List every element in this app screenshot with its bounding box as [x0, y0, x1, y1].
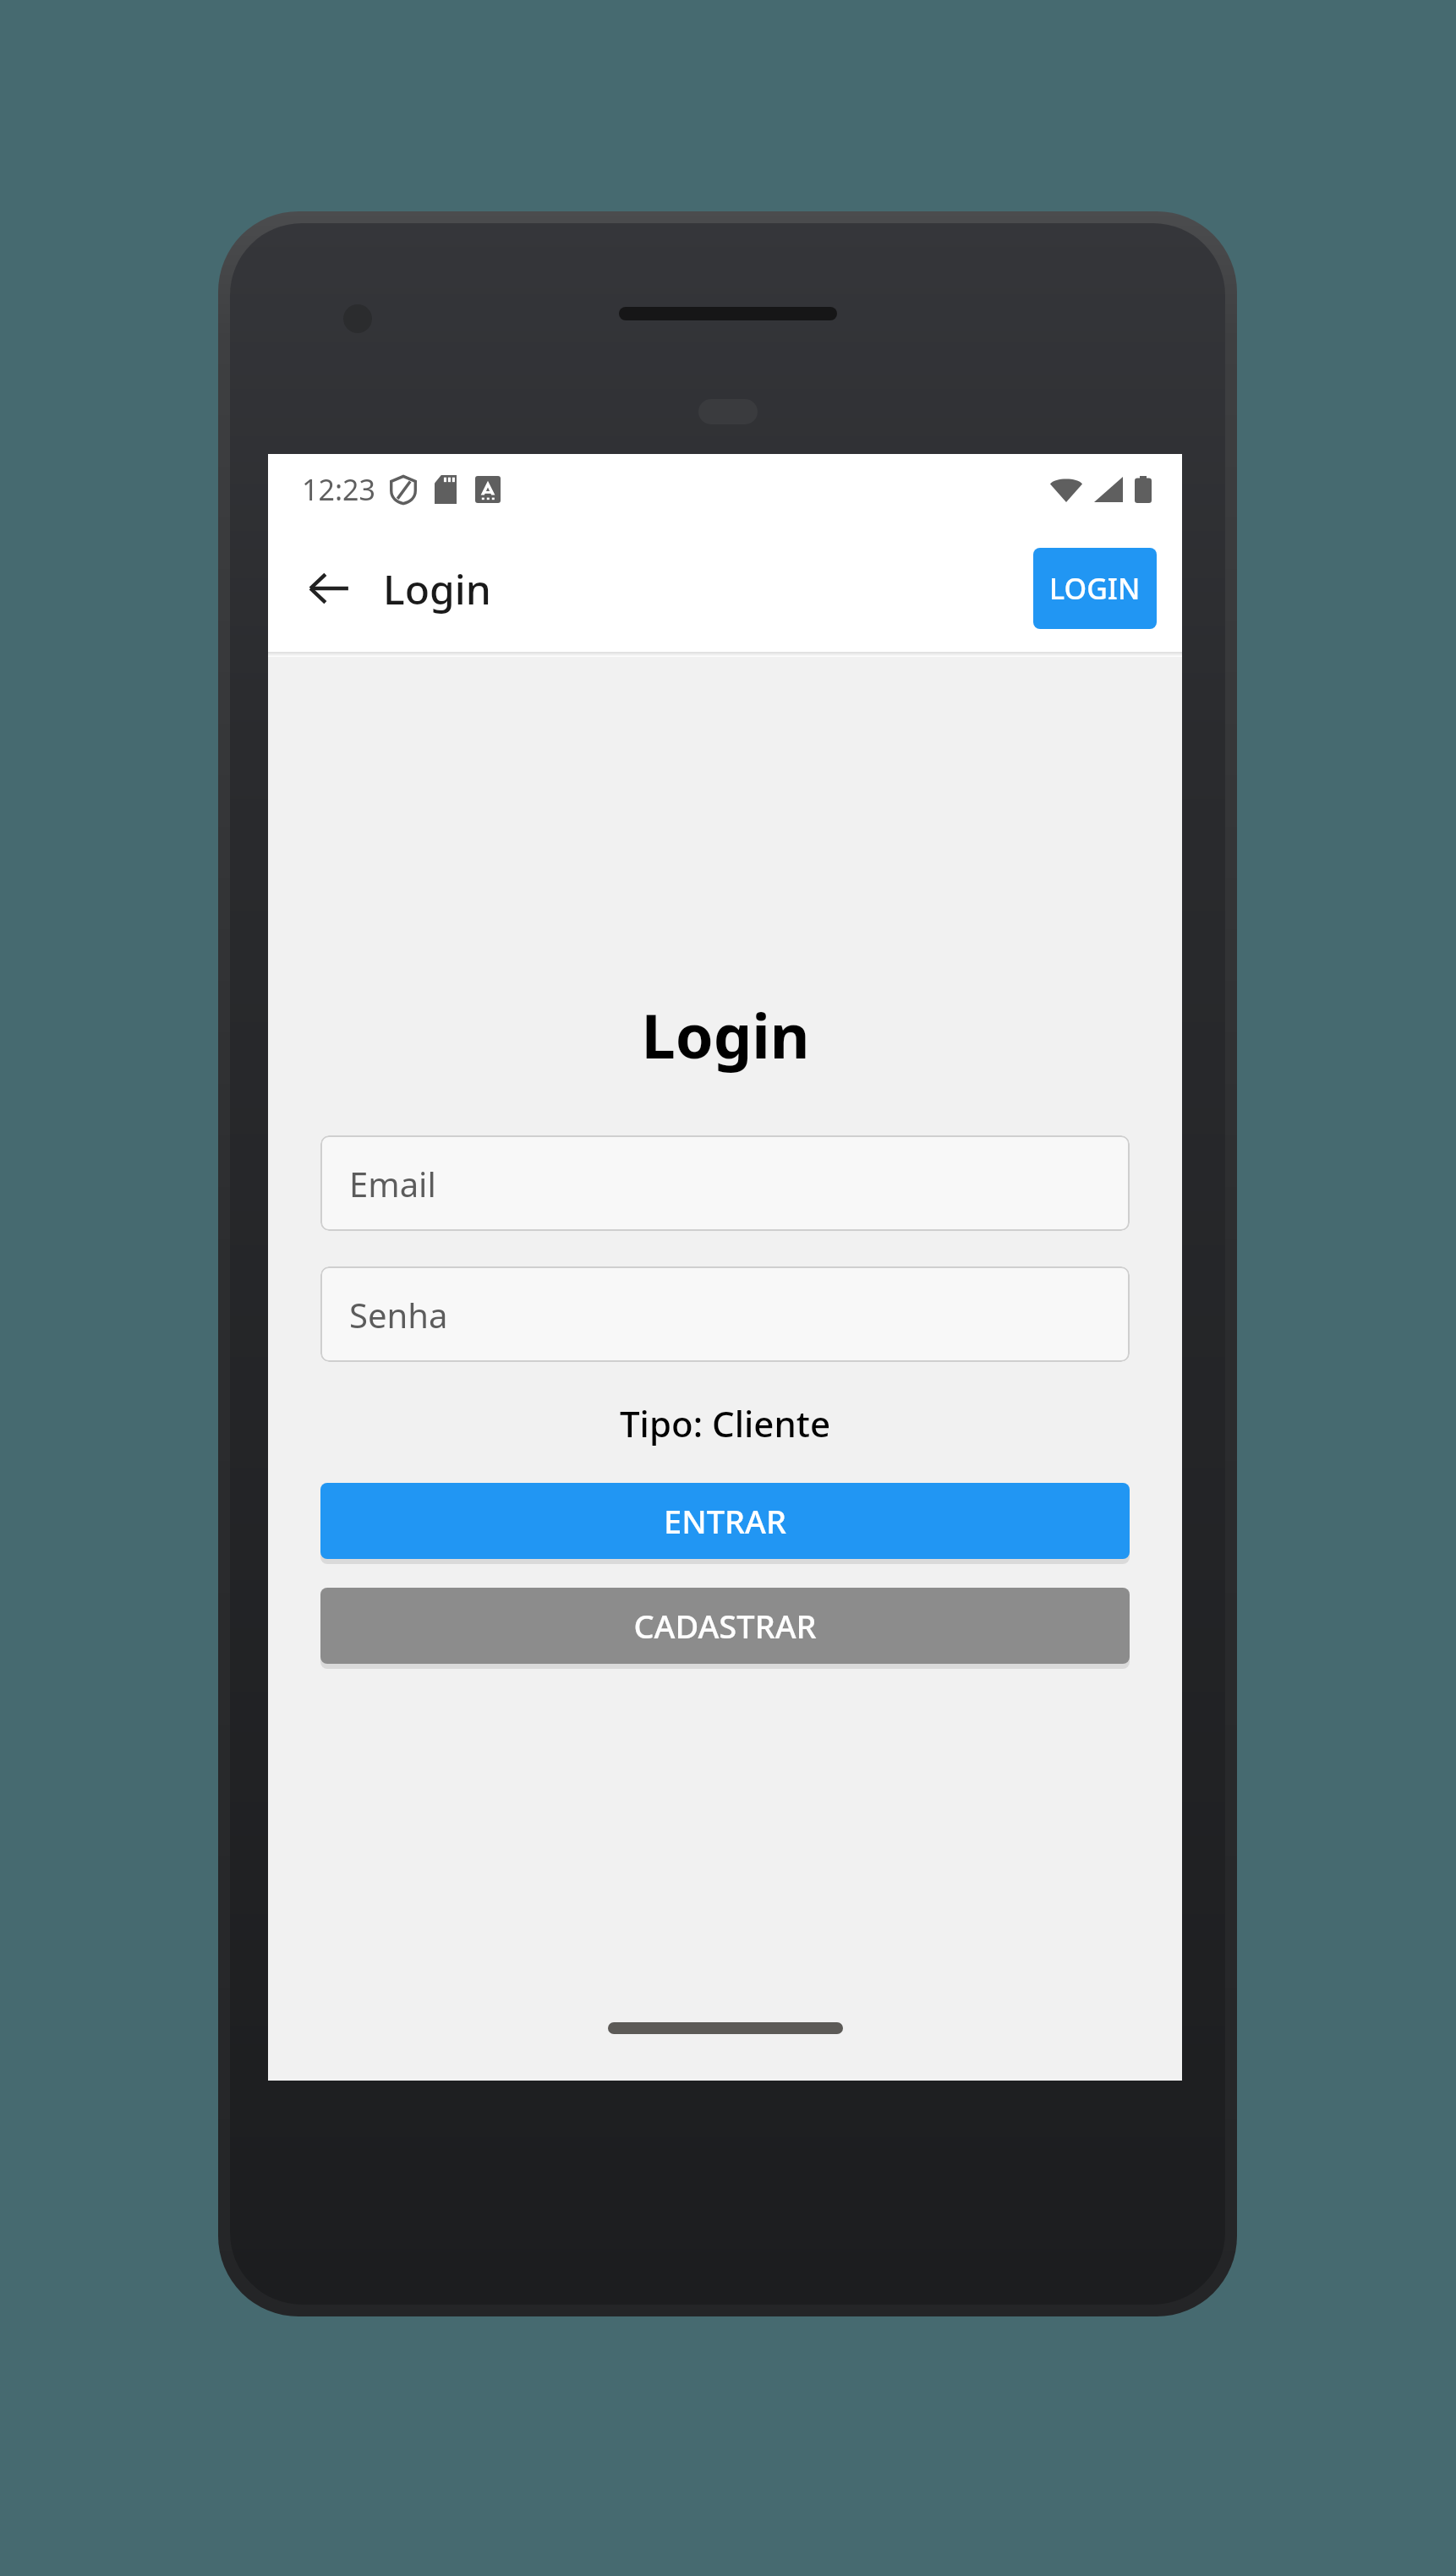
staticText: 12:23	[302, 470, 375, 509]
button[interactable]: ENTRAR	[320, 1483, 1130, 1559]
button[interactable]: Email	[320, 1135, 1130, 1231]
staticText: Login	[641, 993, 810, 1076]
staticText: Tipo: Cliente	[620, 1399, 830, 1447]
staticText: CADASTRAR	[633, 1604, 817, 1648]
button[interactable]: LOGIN	[1033, 548, 1157, 629]
staticText: Login	[383, 561, 491, 616]
staticText: ENTRAR	[664, 1499, 786, 1543]
staticText: LOGIN	[1049, 569, 1141, 608]
button[interactable]: Senha	[320, 1266, 1130, 1362]
button[interactable]: CADASTRAR	[320, 1588, 1130, 1664]
button[interactable]: Back	[293, 553, 364, 624]
staticText: Email	[349, 1161, 436, 1206]
staticText: Senha	[349, 1292, 448, 1337]
